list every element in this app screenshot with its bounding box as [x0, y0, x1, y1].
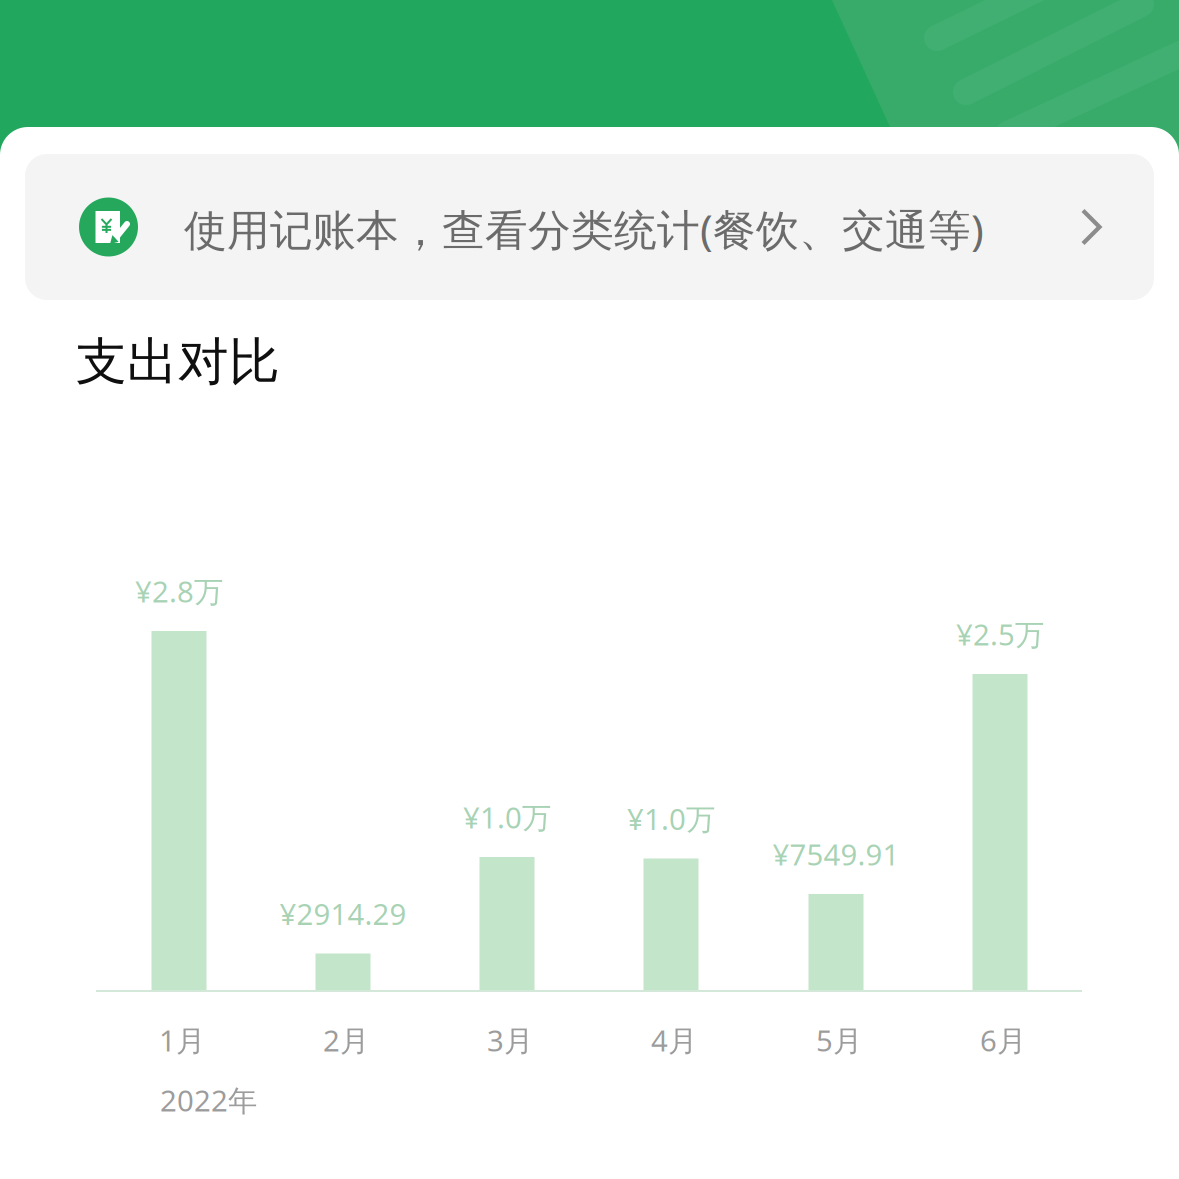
- staticText: 4月: [651, 1020, 697, 1059]
- staticText: ¥2.5万: [956, 614, 1044, 653]
- staticText: 5月: [816, 1020, 862, 1059]
- staticText: 3月: [487, 1020, 533, 1059]
- staticText: 支出对比: [76, 331, 280, 393]
- staticText: 6月: [980, 1020, 1026, 1059]
- staticText: 2022年: [160, 1080, 257, 1119]
- staticText: ¥7549.91: [772, 834, 899, 873]
- staticText: 2月: [323, 1020, 369, 1059]
- button[interactable]: 使用记账本，查看分类统计(餐饮、交通等): [25, 154, 1154, 300]
- staticText: ¥1.0万: [463, 797, 551, 836]
- staticText: ¥2914.29: [279, 894, 406, 933]
- staticText: ¥1.0万: [627, 799, 715, 838]
- staticText: ¥2.8万: [135, 571, 223, 610]
- staticText: 1月: [159, 1020, 205, 1059]
- staticText: 使用记账本，查看分类统计(餐饮、交通等): [184, 201, 984, 257]
